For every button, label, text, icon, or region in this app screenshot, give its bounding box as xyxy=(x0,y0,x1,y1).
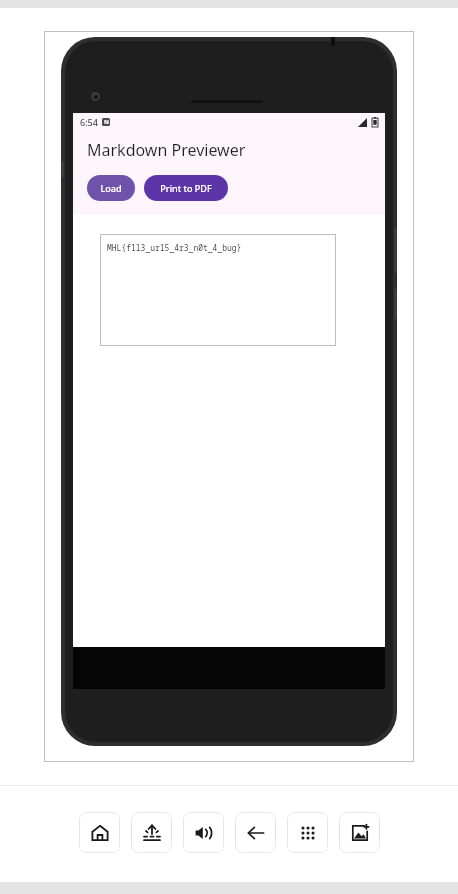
button[interactable]: Screenshot xyxy=(131,812,172,853)
staticText: 6:54 xyxy=(80,116,98,128)
staticText: Print to PDF xyxy=(160,182,212,194)
button[interactable]: Home xyxy=(79,812,120,853)
button[interactable]: Back xyxy=(235,812,276,853)
button[interactable]: MHL{f1l3_ur15_4r3_n0t_4_bug} xyxy=(100,234,336,346)
button[interactable]: Load xyxy=(87,175,135,201)
staticText: MHL{f1l3_ur15_4r3_n0t_4_bug} xyxy=(107,242,242,253)
button[interactable]: Add image xyxy=(339,812,380,853)
staticText: N xyxy=(104,118,109,126)
button[interactable]: Volume xyxy=(183,812,224,853)
button[interactable]: Print to PDF xyxy=(144,175,228,201)
button[interactable]: Apps xyxy=(287,812,328,853)
staticText: Markdown Previewer xyxy=(87,139,246,161)
staticText: Load xyxy=(100,182,122,194)
